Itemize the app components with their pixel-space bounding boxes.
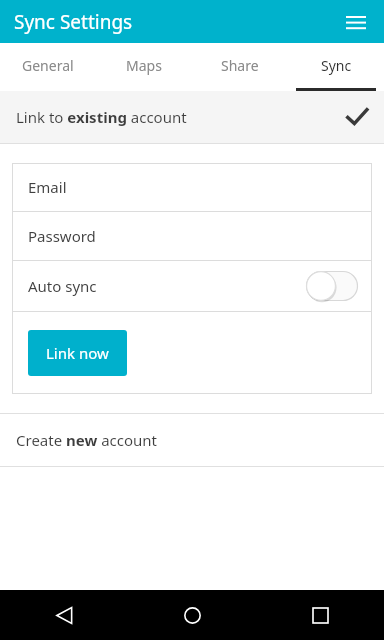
button[interactable]: Link to existing account xyxy=(0,91,384,143)
staticText: Password xyxy=(28,226,96,246)
button[interactable]: Maps xyxy=(96,43,192,91)
staticText: Create new account xyxy=(16,430,158,450)
staticText: Link to existing account xyxy=(16,107,187,127)
button[interactable]: Link now xyxy=(28,330,127,376)
button[interactable]: Auto sync xyxy=(12,261,372,311)
other: Auto sync toggle xyxy=(306,271,358,301)
staticText: Auto sync xyxy=(28,276,97,296)
button[interactable]: Share xyxy=(192,43,288,91)
button[interactable]: Password xyxy=(12,212,372,260)
button[interactable]: General xyxy=(0,43,96,91)
staticText: Share xyxy=(221,56,259,75)
staticText: General xyxy=(22,56,74,75)
staticText: Sync Settings xyxy=(14,9,133,35)
staticText: Email xyxy=(28,177,67,197)
button[interactable]: Sync xyxy=(288,43,384,91)
button[interactable]: Email xyxy=(12,163,372,211)
button[interactable]: Home xyxy=(128,590,256,640)
button[interactable]: Create new account xyxy=(0,414,384,466)
button[interactable]: Open menu xyxy=(336,2,376,42)
staticText: Maps xyxy=(126,56,162,75)
button[interactable]: Back xyxy=(0,590,128,640)
staticText: Link now xyxy=(46,343,109,363)
button[interactable]: Recent apps xyxy=(256,590,384,640)
staticText: Sync xyxy=(321,56,352,75)
